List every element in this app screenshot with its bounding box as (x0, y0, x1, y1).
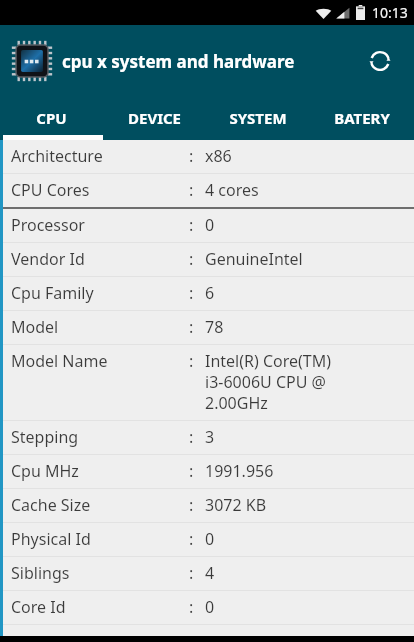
staticText: GenuineIntel (205, 248, 303, 270)
button[interactable]: Processor (3, 209, 414, 243)
staticText: Siblings (11, 562, 189, 584)
staticText: 3 (205, 426, 215, 448)
staticText: SYSTEM (229, 108, 287, 128)
staticText: BATERY (334, 108, 390, 128)
staticText: 0 (205, 214, 215, 236)
staticText: : (189, 145, 205, 167)
staticText: 4 cores (205, 179, 259, 201)
staticText: Model (11, 316, 189, 338)
button[interactable]: Cpu Family (3, 277, 414, 311)
staticText: Model Name (11, 350, 189, 372)
staticText: : (189, 282, 205, 304)
staticText: Intel(R) Core(TM) i3-6006U CPU @ 2.00GHz (205, 350, 332, 414)
staticText: Cache Size (11, 494, 189, 516)
staticText: : (189, 460, 205, 482)
staticText: DEVICE (128, 108, 181, 128)
button[interactable]: Siblings (3, 557, 414, 591)
button[interactable]: Stepping (3, 421, 414, 455)
staticText: 0 (205, 596, 215, 618)
staticText: : (189, 494, 205, 516)
staticText: cpu x system and hardware (62, 50, 295, 73)
staticText: Core Id (11, 596, 189, 618)
staticText: Stepping (11, 426, 189, 448)
button[interactable]: Refresh (358, 39, 402, 83)
staticText: : (189, 596, 205, 618)
staticText: 3072 KB (205, 494, 267, 516)
staticText: : (189, 316, 205, 338)
staticText: Processor (11, 214, 189, 236)
staticText: Vendor Id (11, 248, 189, 270)
staticText: : (189, 350, 205, 372)
staticText: Cpu MHz (11, 460, 189, 482)
staticText: : (189, 562, 205, 584)
button[interactable]: Physical Id (3, 523, 414, 557)
staticText: : (189, 214, 205, 236)
staticText: CPU (36, 108, 67, 128)
button[interactable]: Vendor Id (3, 243, 414, 277)
button[interactable]: CPU (0, 96, 103, 140)
button[interactable]: Architecture (3, 140, 414, 174)
button[interactable]: SYSTEM (206, 96, 310, 140)
button[interactable]: Model (3, 311, 414, 345)
staticText: 4 (205, 562, 215, 584)
staticText: : (189, 426, 205, 448)
staticText: : (189, 248, 205, 270)
button[interactable]: Model Name (3, 345, 414, 421)
button[interactable]: CPU Cores (3, 174, 414, 209)
staticText: : (189, 528, 205, 550)
staticText: 1991.956 (205, 460, 274, 482)
staticText: 10:13 (372, 3, 408, 22)
staticText: 6 (205, 282, 215, 304)
button[interactable]: Core Id (3, 591, 414, 625)
button[interactable]: Cpu MHz (3, 455, 414, 489)
staticText: x86 (205, 145, 232, 167)
staticText: Physical Id (11, 528, 189, 550)
staticText: 78 (205, 316, 224, 338)
button[interactable]: BATERY (310, 96, 414, 140)
staticText: Architecture (11, 145, 189, 167)
button[interactable]: Cache Size (3, 489, 414, 523)
staticText: : (189, 179, 205, 201)
staticText: 0 (205, 528, 215, 550)
button[interactable]: DEVICE (103, 96, 206, 140)
staticText: Cpu Family (11, 282, 189, 304)
staticText: CPU Cores (11, 179, 189, 201)
